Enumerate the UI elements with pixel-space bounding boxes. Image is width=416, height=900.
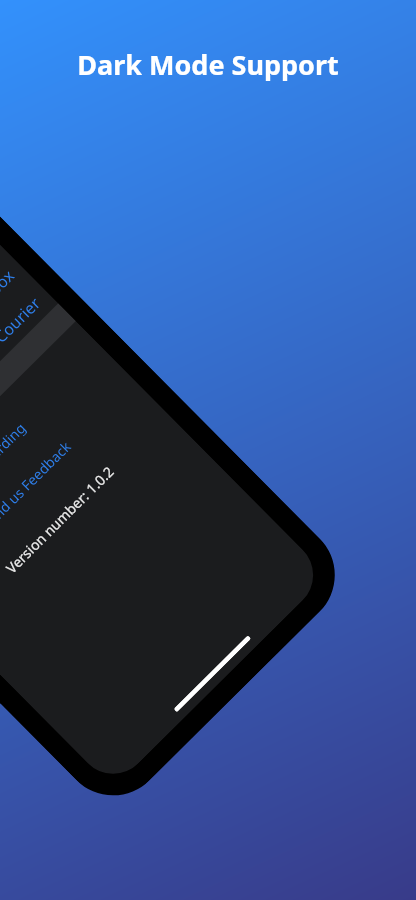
- button[interactable]: App icon: [0, 278, 60, 518]
- staticText: Onboarding: [0, 418, 29, 487]
- button[interactable]: Onboarding: [0, 340, 108, 566]
- staticText: Courier: [0, 292, 46, 348]
- staticText: Version number: 1.0.2: [1, 462, 117, 577]
- button[interactable]: Default tab: [0, 251, 33, 491]
- staticText: Dark Mode Support: [0, 46, 416, 83]
- button[interactable]: Send us Feedback: [0, 372, 139, 598]
- staticText: Inbox: [0, 265, 19, 311]
- staticText: Send us Feedback: [0, 437, 74, 533]
